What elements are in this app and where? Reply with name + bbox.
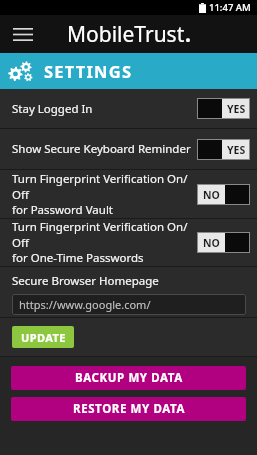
staticText: Turn Fingerprint Verification On/Off <box>12 171 197 202</box>
staticText: YES <box>227 102 246 116</box>
staticText: RESTORE MY DATA <box>73 401 185 417</box>
staticText: for Password Vault <box>12 202 114 218</box>
button[interactable]: Menu <box>8 19 38 49</box>
staticText: . <box>185 20 191 49</box>
button[interactable]: Toggle off <box>197 184 250 205</box>
button[interactable]: https://www.google.com/ <box>12 294 246 315</box>
button[interactable]: Turn Fingerprint Verification On/Off <box>0 219 257 266</box>
button[interactable]: Turn Fingerprint Verification On/Off <box>0 170 257 218</box>
staticText: BACKUP MY DATA <box>75 370 183 386</box>
button[interactable]: UPDATE <box>12 326 74 348</box>
staticText: Show Secure Keyboard Reminder <box>12 141 191 157</box>
button[interactable]: Toggle off <box>197 232 250 253</box>
staticText: Secure Browser Homepage <box>12 273 159 289</box>
button[interactable]: Toggle on <box>197 139 250 160</box>
staticText: for One-Time Passwords <box>12 250 144 266</box>
staticText: UPDATE <box>21 330 66 345</box>
staticText: https://www.google.com/ <box>19 297 151 312</box>
button[interactable]: Stay Logged In <box>0 89 257 128</box>
staticText: NO <box>203 188 220 202</box>
staticText: NO <box>203 236 220 250</box>
button[interactable]: RESTORE MY DATA <box>11 397 246 421</box>
button[interactable]: Toggle on <box>197 98 250 119</box>
staticText: Stay Logged In <box>12 101 93 117</box>
staticText: MobileTrust <box>67 20 185 49</box>
staticText: SETTINGS <box>44 60 133 82</box>
button[interactable]: Show Secure Keyboard Reminder <box>0 129 257 169</box>
button[interactable]: BACKUP MY DATA <box>11 366 246 390</box>
staticText: YES <box>227 143 246 157</box>
staticText: Turn Fingerprint Verification On/Off <box>12 219 197 250</box>
staticText: 11:47 AM <box>209 1 251 14</box>
